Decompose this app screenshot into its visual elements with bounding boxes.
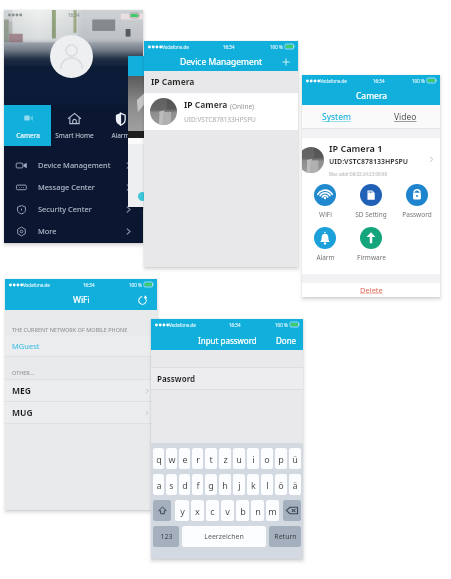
staticText: MGuest xyxy=(12,341,40,351)
staticText: Smart Home xyxy=(55,131,94,140)
button[interactable]: w xyxy=(166,448,177,469)
staticText: Camera xyxy=(16,131,40,140)
button[interactable]: e xyxy=(179,448,190,469)
button[interactable]: ö xyxy=(275,474,287,495)
button[interactable]: WiFi xyxy=(302,184,348,219)
button[interactable]: System xyxy=(302,105,371,128)
button[interactable]: MUG xyxy=(5,402,157,423)
button[interactable]: Delete xyxy=(302,283,440,297)
button[interactable]: t xyxy=(205,448,217,469)
staticText: u xyxy=(236,453,242,465)
staticText: f xyxy=(196,479,200,491)
staticText: k xyxy=(251,479,256,491)
staticText: Delete xyxy=(360,285,383,295)
staticText: o xyxy=(264,453,270,465)
button[interactable]: Password xyxy=(394,184,440,219)
button[interactable]: Smart Home xyxy=(51,105,97,146)
staticText: Alarm xyxy=(111,131,130,140)
button[interactable]: q xyxy=(153,448,164,469)
staticText: Mac addr:08:02:24:23:09:98 xyxy=(329,171,387,177)
button[interactable]: Message Center xyxy=(4,176,143,198)
button[interactable]: Security Center xyxy=(4,198,143,220)
button[interactable]: Device Management xyxy=(4,154,143,176)
staticText: 16:34 xyxy=(373,78,385,84)
button[interactable]: u xyxy=(233,448,245,469)
staticText: System xyxy=(322,111,351,123)
staticText: 16:34 xyxy=(68,12,80,18)
button[interactable]: Camera xyxy=(4,105,51,146)
button[interactable]: r xyxy=(192,448,203,469)
button[interactable]: d xyxy=(179,474,190,495)
button[interactable]: ä xyxy=(289,474,301,495)
button[interactable]: a xyxy=(153,474,164,495)
staticText: b xyxy=(240,505,246,517)
staticText: Vodafone.de xyxy=(169,322,196,328)
staticText: n xyxy=(255,505,261,517)
button[interactable]: 123 xyxy=(153,526,179,547)
button[interactable]: IP Camera xyxy=(144,93,298,130)
button[interactable]: s xyxy=(166,474,177,495)
staticText: (Online) xyxy=(230,102,255,111)
staticText: Device Management xyxy=(180,56,263,68)
staticText: w xyxy=(168,453,176,465)
button[interactable]: k xyxy=(247,474,259,495)
button[interactable]: ü xyxy=(289,448,301,469)
staticText: q xyxy=(156,453,162,465)
button[interactable]: m xyxy=(266,500,279,521)
staticText: Vodafone.de xyxy=(320,78,347,84)
button[interactable]: IP Camera 1 xyxy=(302,138,440,181)
button[interactable]: o xyxy=(261,448,273,469)
staticText: IP Camera xyxy=(151,76,195,88)
staticText: c xyxy=(210,505,215,517)
button[interactable]: v xyxy=(221,500,234,521)
button[interactable]: Alarm xyxy=(302,227,348,262)
staticText: Firmware xyxy=(357,253,386,262)
button[interactable]: Firmware xyxy=(348,227,394,262)
button[interactable]: f xyxy=(192,474,203,495)
button[interactable]: Backspace xyxy=(283,500,301,521)
staticText: Leerzeichen xyxy=(204,532,244,542)
button[interactable]: Video xyxy=(371,105,440,128)
staticText: 16:34 xyxy=(229,322,241,328)
staticText: More xyxy=(38,226,124,236)
button[interactable]: j xyxy=(233,474,245,495)
button[interactable]: SD Setting xyxy=(348,184,394,219)
staticText: d xyxy=(182,479,188,491)
staticText: UID:VSTC878133HPSPU xyxy=(329,157,409,167)
button[interactable]: MGuest xyxy=(5,336,157,356)
staticText: r xyxy=(196,453,200,465)
button[interactable]: Return xyxy=(269,526,301,547)
button[interactable]: n xyxy=(251,500,264,521)
button[interactable]: More xyxy=(4,220,143,242)
staticText: ö xyxy=(278,479,284,491)
staticText: Done xyxy=(276,335,297,346)
button[interactable]: l xyxy=(261,474,273,495)
staticText: e xyxy=(182,453,188,465)
button[interactable]: y xyxy=(175,500,189,521)
staticText: t xyxy=(209,453,213,465)
button[interactable]: Add device xyxy=(281,57,291,67)
button[interactable]: i xyxy=(247,448,259,469)
button[interactable]: Done xyxy=(276,335,297,346)
button[interactable]: b xyxy=(236,500,249,521)
button[interactable]: Shift xyxy=(153,500,171,521)
staticText: WiFi xyxy=(73,294,90,306)
button[interactable]: Alarm xyxy=(97,105,143,146)
button[interactable]: h xyxy=(219,474,231,495)
staticText: 16:34 xyxy=(223,44,235,50)
staticText: 100 % xyxy=(270,44,283,50)
staticText: OTHER... xyxy=(12,369,35,376)
button[interactable]: c xyxy=(206,500,219,521)
staticText: h xyxy=(222,479,228,491)
staticText: 100 % xyxy=(129,282,142,288)
button[interactable]: z xyxy=(219,448,231,469)
staticText: m xyxy=(268,505,277,517)
staticText: x xyxy=(195,505,200,517)
button[interactable]: x xyxy=(191,500,204,521)
button[interactable]: p xyxy=(275,448,287,469)
button[interactable]: MEG xyxy=(5,380,157,401)
staticText: IP Camera 1 xyxy=(329,142,383,154)
button[interactable]: Refresh xyxy=(137,295,148,306)
button[interactable]: g xyxy=(205,474,217,495)
button[interactable]: Leerzeichen xyxy=(182,526,266,547)
